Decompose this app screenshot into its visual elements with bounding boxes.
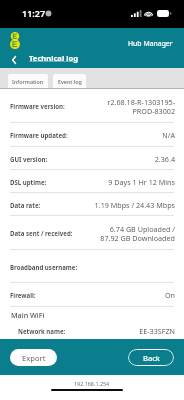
button[interactable]: Firmware version: bbox=[0, 89, 184, 123]
button[interactable]: Firmware updated: bbox=[0, 123, 184, 147]
staticText: Broadband username: bbox=[10, 263, 175, 271]
button[interactable]: Network name: bbox=[0, 323, 184, 339]
staticText: Back bbox=[143, 353, 160, 363]
button[interactable]: GUI version: bbox=[0, 147, 184, 170]
staticText: Firmware updated: bbox=[10, 131, 162, 139]
staticText: Data sent / received: bbox=[10, 229, 100, 237]
staticText: Technical log bbox=[29, 53, 78, 63]
staticText: N/A bbox=[162, 130, 175, 140]
button[interactable]: Export bbox=[10, 349, 57, 366]
staticText: 1.19 Mbps / 24.43 Mbps bbox=[94, 200, 175, 210]
button[interactable]: Back bbox=[7, 53, 20, 66]
button[interactable]: DSL uptime: bbox=[0, 170, 184, 193]
staticText: 2.36.4 bbox=[154, 154, 175, 164]
button[interactable]: Back bbox=[128, 349, 174, 366]
button[interactable]: Information bbox=[8, 74, 48, 89]
staticText: Firmware version: bbox=[10, 102, 107, 110]
staticText: 9 Days 1 Hr 12 Mins bbox=[108, 177, 175, 187]
button[interactable]: Broadband username: bbox=[0, 250, 184, 283]
staticText: Network name: bbox=[18, 327, 139, 335]
staticText: Data rate: bbox=[10, 201, 94, 209]
staticText: Firewall: bbox=[10, 291, 164, 299]
button[interactable]: Firewall: bbox=[0, 283, 184, 307]
button[interactable]: Data rate: bbox=[0, 193, 184, 216]
staticText: EE-33SFZN bbox=[139, 326, 175, 336]
staticText: r2.68.18-R-1303195- PROD-83002 bbox=[107, 97, 175, 116]
button[interactable]: Event log bbox=[53, 74, 86, 89]
staticText: Event log bbox=[58, 78, 82, 85]
staticText: Information bbox=[12, 78, 44, 85]
button[interactable]: Data sent / received: bbox=[0, 216, 184, 250]
staticText: Main WiFi bbox=[11, 310, 45, 320]
staticText: 11:27 bbox=[22, 7, 46, 19]
staticText: Export bbox=[22, 353, 46, 363]
staticText: On bbox=[164, 290, 175, 300]
staticText: DSL uptime: bbox=[10, 178, 108, 186]
staticText: GUI version: bbox=[10, 155, 154, 163]
staticText: 192.168.1.254 bbox=[74, 380, 110, 387]
staticText: 6.74 GB Uploaded / 87.92 GB Downloaded bbox=[100, 224, 175, 243]
staticText: Hub Manager bbox=[128, 39, 173, 48]
